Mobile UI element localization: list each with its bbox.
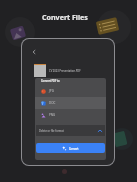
staticText: PNG [49, 113, 56, 117]
button[interactable]: DOC [35, 97, 106, 109]
staticText: Delete or file format [39, 129, 64, 133]
staticText: Convert Files [42, 12, 88, 22]
staticText: JPG [49, 89, 54, 93]
staticText: Convert [69, 147, 79, 150]
button[interactable]: Convert [36, 143, 105, 153]
button[interactable]: JPG [35, 85, 106, 97]
staticText: CV 2023 Presentation.PDF [49, 69, 81, 73]
button[interactable]: Delete or file format [36, 125, 105, 136]
button[interactable]: PNG [35, 109, 106, 121]
staticText: DOC [49, 101, 56, 105]
button[interactable]: Back [31, 49, 37, 55]
button[interactable]: CV 2023 Presentation.PDF [34, 64, 106, 77]
other: Expand [97, 128, 103, 134]
staticText: Convert PDF to [41, 79, 60, 82]
